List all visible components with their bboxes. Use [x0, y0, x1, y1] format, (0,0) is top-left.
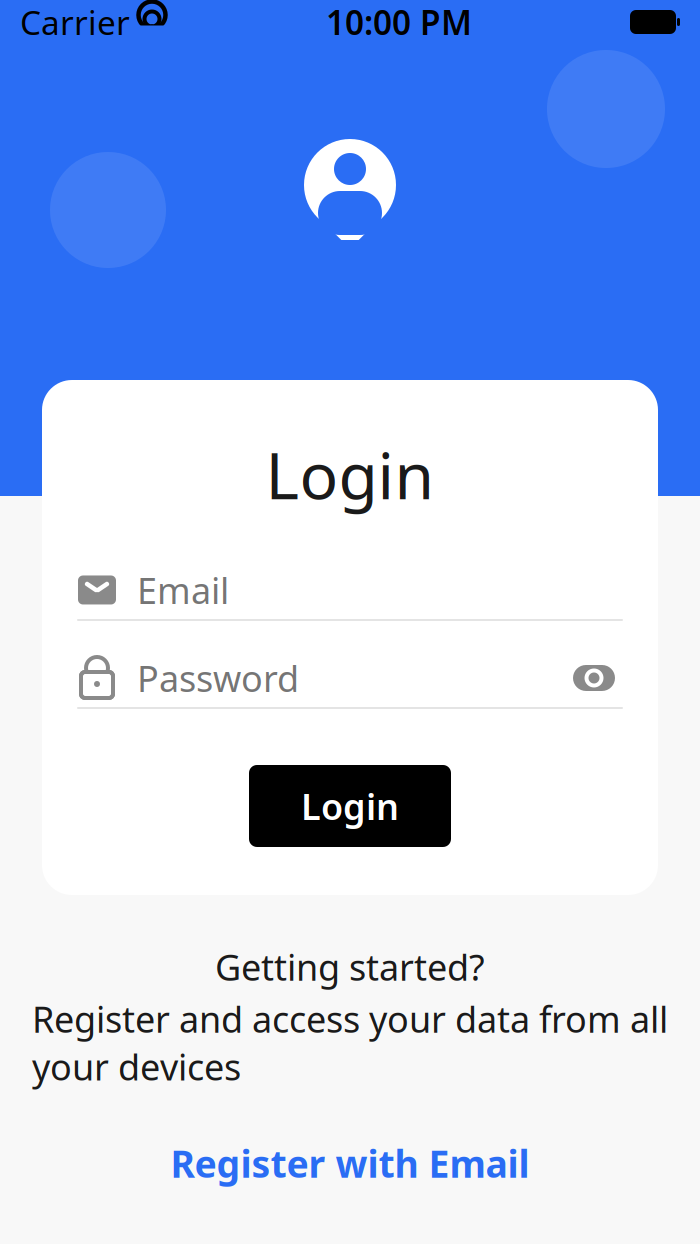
staticText: Getting started? — [215, 943, 485, 991]
staticText: Register and access your data from all y… — [32, 995, 668, 1090]
button[interactable]: Login — [249, 765, 451, 847]
button[interactable]: Show password — [565, 657, 623, 699]
staticText: Login — [301, 782, 399, 830]
staticText: Login — [265, 432, 434, 517]
staticText: Register with Email — [170, 1138, 529, 1188]
staticText: 10:00 PM — [326, 0, 472, 44]
staticText: Carrier — [20, 0, 130, 44]
button[interactable]: Register with Email — [152, 1128, 547, 1198]
staticText: Email — [137, 566, 229, 614]
staticText: Password — [137, 654, 299, 702]
